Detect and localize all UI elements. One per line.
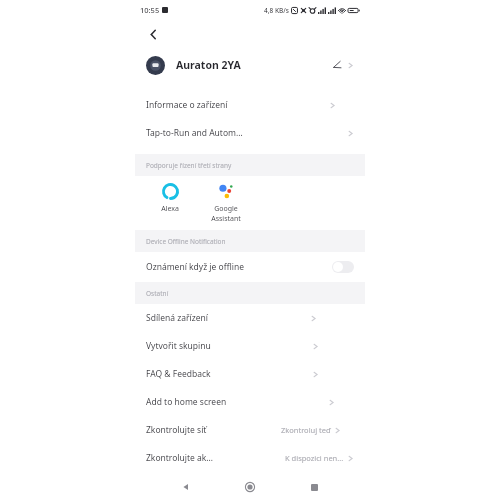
button[interactable]: Tap-to-Run and Automation: [135, 119, 365, 147]
staticText: Zkontrolujte síť: [146, 424, 207, 436]
staticText: Add to home screen: [146, 396, 227, 408]
button[interactable]: Zkontrolujte síť: [135, 416, 365, 444]
staticText: Zkontrolujte aktualizaci firmwaru: [146, 452, 215, 464]
button[interactable]: Oznámení když je offline: [135, 252, 365, 282]
staticText: FAQ & Feedback: [146, 368, 211, 380]
button[interactable]: Home: [237, 474, 263, 500]
button[interactable]: Back: [142, 23, 164, 45]
staticText: Informace o zařízení: [146, 99, 228, 111]
button[interactable]: Zkontrolujte aktualizaci firmwaru: [135, 444, 365, 472]
staticText: Device Offline Notification: [146, 237, 226, 246]
staticText: Vytvořit skupinu: [146, 340, 211, 352]
staticText: Ostatní: [146, 289, 169, 298]
button[interactable]: Alexa: [149, 176, 191, 214]
staticText: Alexa: [161, 204, 179, 214]
staticText: Google Assistant: [211, 204, 241, 224]
other: Offline notification toggle: [332, 261, 354, 273]
staticText: Tap-to-Run and Automation: [146, 127, 246, 139]
button[interactable]: Google Assistant: [203, 176, 249, 224]
button[interactable]: Vytvořit skupinu: [135, 332, 365, 360]
staticText: 10:55: [140, 5, 160, 15]
staticText: Oznámení když je offline: [146, 261, 244, 273]
staticText: Sdílená zařízení: [146, 312, 209, 324]
other: Edit name: [330, 58, 344, 72]
button[interactable]: Add to home screen: [135, 388, 365, 416]
staticText: Zkontroluj teď: [281, 425, 331, 435]
staticText: Auraton 2YA: [176, 58, 241, 72]
button[interactable]: Auraton 2YA: [135, 48, 365, 82]
button[interactable]: FAQ & Feedback: [135, 360, 365, 388]
button[interactable]: Sdílená zařízení: [135, 304, 365, 332]
staticText: Podporuje řízení třetí strany: [146, 161, 232, 170]
button[interactable]: Recents: [301, 474, 327, 500]
button[interactable]: Back: [173, 474, 199, 500]
staticText: K dispozici nen...: [285, 453, 344, 463]
staticText: 4,8 KB/s: [264, 6, 289, 15]
button[interactable]: Informace o zařízení: [135, 91, 365, 119]
